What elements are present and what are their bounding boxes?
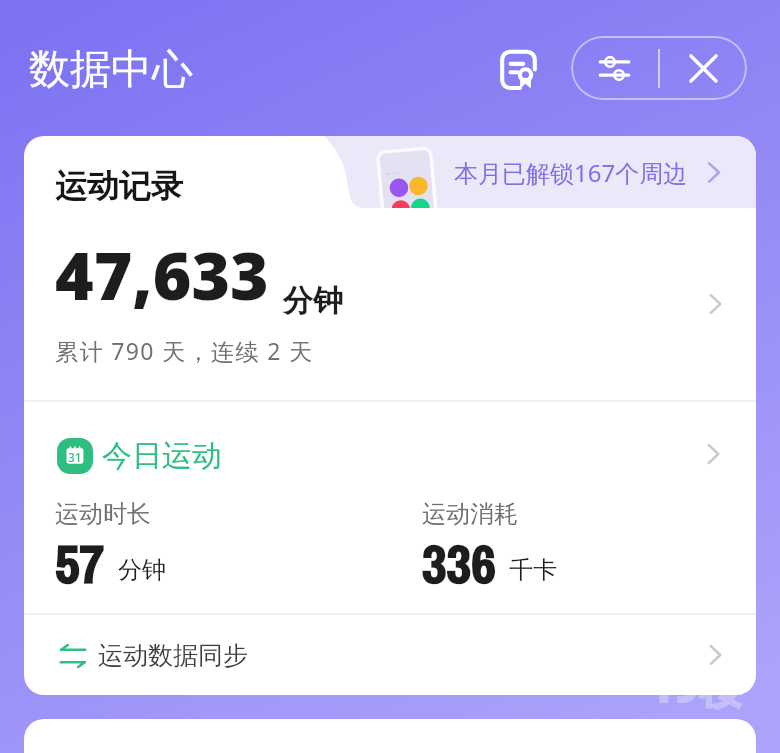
- staticText: 19楼: [648, 656, 744, 716]
- button[interactable]: Certificate: [489, 39, 547, 97]
- button[interactable]: Filter settings: [571, 36, 658, 100]
- staticText: 47,633: [55, 229, 269, 319]
- staticText: 本月已解锁167个周边: [454, 156, 688, 189]
- staticText: 今日运动: [102, 437, 222, 475]
- button[interactable]: 运动数据同步: [24, 615, 756, 695]
- button[interactable]: 本月已解锁167个周边: [24, 136, 756, 208]
- button[interactable]: Close: [660, 36, 747, 100]
- button[interactable]: 47,633: [24, 208, 756, 400]
- staticText: 运动记录: [55, 166, 183, 206]
- staticText: 57: [55, 527, 105, 600]
- staticText: 19lou.com: [642, 716, 750, 745]
- staticText: 分钟: [283, 282, 343, 320]
- button[interactable]: 31: [24, 402, 756, 613]
- staticText: 累计 790 天，连续 2 天: [55, 335, 314, 366]
- staticText: 运动数据同步: [98, 640, 248, 671]
- staticText: 千卡: [509, 555, 557, 585]
- staticText: 336: [422, 527, 496, 600]
- staticText: 运动消耗: [422, 499, 518, 529]
- staticText: 运动时长: [55, 499, 151, 529]
- staticText: 31: [68, 449, 82, 465]
- staticText: 分钟: [118, 555, 166, 585]
- staticText: 数据中心: [29, 44, 193, 96]
